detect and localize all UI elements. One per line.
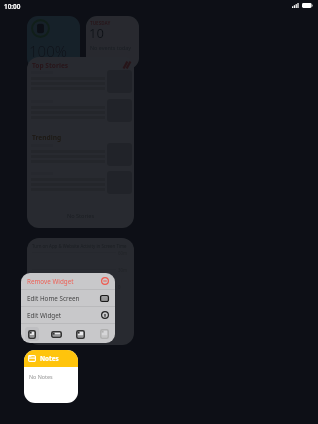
- other: Remove: [101, 277, 109, 285]
- button[interactable]: TUESDAY: [86, 16, 139, 69]
- staticText: Edit Home Screen: [27, 294, 80, 303]
- button[interactable]: Widget size: [49, 327, 63, 341]
- other: Edit Widget: [101, 311, 109, 319]
- other: Edit Home Screen: [100, 295, 109, 302]
- staticText: 10: [89, 24, 104, 42]
- staticText: 10:00: [4, 2, 21, 11]
- button[interactable]: Widget size: [73, 327, 87, 341]
- staticText: Remove Widget: [27, 277, 74, 286]
- staticText: No Notes: [29, 373, 53, 380]
- button[interactable]: Widget size: [97, 327, 111, 341]
- button[interactable]: Turn on App & Website Activity in Screen…: [27, 238, 134, 345]
- staticText: TUESDAY: [90, 20, 111, 26]
- button[interactable]: Remove Widget: [21, 273, 115, 289]
- button[interactable]: Edit Home Screen: [21, 290, 115, 306]
- staticText: Notes: [40, 354, 59, 363]
- button[interactable]: Edit Widget: [21, 307, 115, 323]
- staticText: Trending: [32, 133, 62, 142]
- button[interactable]: Notes: [24, 350, 78, 403]
- button[interactable]: Top Stories: [27, 57, 134, 228]
- staticText: Top Stories: [32, 61, 69, 70]
- button[interactable]: Widget size: [25, 327, 39, 341]
- staticText: No events today: [90, 44, 132, 51]
- staticText: Edit Widget: [27, 311, 61, 320]
- button[interactable]: 100%: [27, 16, 80, 69]
- staticText: 100%: [29, 41, 67, 61]
- staticText: Turn on App & Website Activity in Screen…: [32, 243, 127, 249]
